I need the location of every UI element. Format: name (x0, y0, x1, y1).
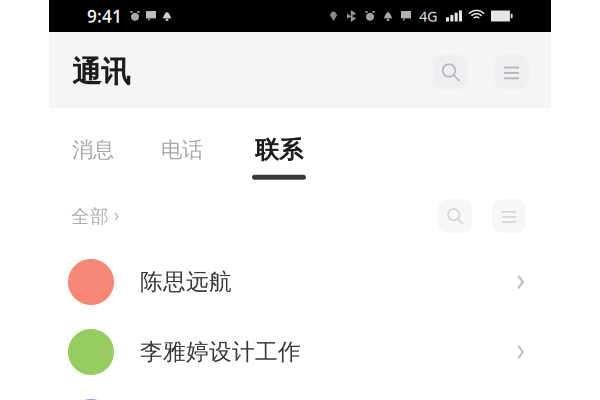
button[interactable]: 排序 (438, 199, 472, 233)
button[interactable]: 消息 (63, 118, 123, 188)
button[interactable]: 陈思远航 (49, 247, 551, 317)
staticText: 通讯 (72, 54, 130, 90)
staticText: 李雅婷设计工作 (140, 338, 301, 366)
button[interactable]: 李雅婷设计工作 (49, 317, 551, 387)
button[interactable]: 更多 (494, 54, 529, 89)
button[interactable]: 联系 (249, 118, 309, 188)
staticText: 陈思远航 (140, 268, 232, 296)
staticText: 9:41 (87, 4, 122, 27)
staticText: 全部 (71, 205, 109, 228)
button[interactable]: 搜索 (433, 54, 468, 89)
button[interactable]: 电话 (152, 118, 212, 188)
button[interactable]: 筛选 (492, 199, 526, 233)
staticText: 4G (419, 6, 438, 26)
staticText: 消息 (72, 137, 114, 163)
button[interactable]: 全部 (71, 199, 119, 236)
button[interactable]: 王志强 (49, 387, 551, 400)
staticText: 联系 (255, 135, 303, 165)
staticText: 电话 (161, 137, 203, 163)
